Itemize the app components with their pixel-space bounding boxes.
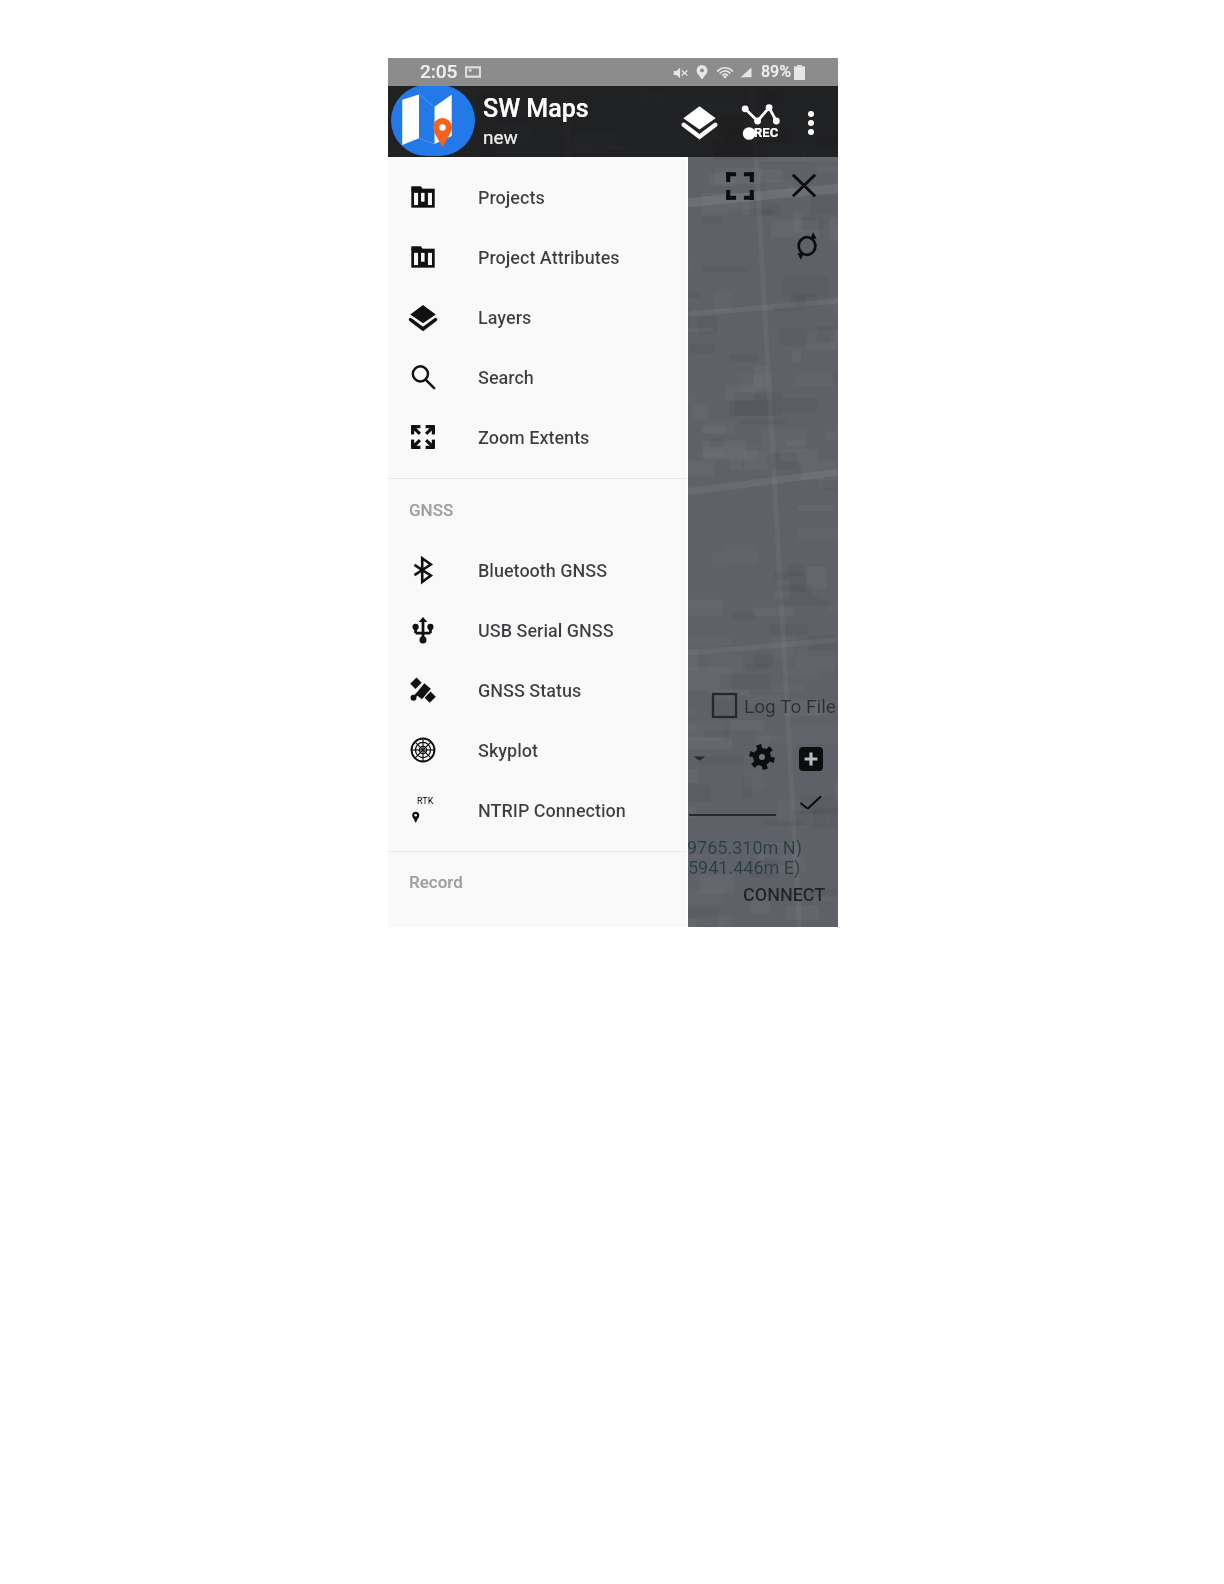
staticText: Record (409, 872, 463, 892)
button[interactable]: Layers (675, 97, 723, 145)
staticText: new (483, 126, 518, 148)
button[interactable]: Settings (749, 744, 775, 770)
staticText: NTRIP Connection (478, 800, 626, 821)
staticText: 2:05 (420, 60, 458, 82)
staticText: Skyplot (478, 740, 539, 761)
button[interactable]: Refresh (796, 233, 818, 259)
staticText: SW Maps (483, 94, 589, 123)
staticText: USB Serial GNSS (478, 620, 614, 641)
staticText: 9765.310m N) (687, 837, 802, 858)
staticText: GNSS (409, 500, 454, 520)
button[interactable]: Open dropdown (692, 751, 706, 765)
button[interactable]: CONNECT (743, 884, 826, 905)
button[interactable]: More options (791, 103, 831, 143)
button[interactable]: Record track (737, 97, 783, 149)
button[interactable]: Add (799, 747, 823, 771)
staticText: Project Attributes (478, 247, 620, 268)
staticText: 89% (761, 62, 791, 81)
button[interactable]: USB Serial GNSS (388, 600, 688, 660)
staticText: Search (478, 367, 534, 388)
staticText: 5941.446m E) (688, 857, 801, 878)
button[interactable]: Skyplot (388, 720, 688, 780)
button[interactable]: Projects (388, 167, 688, 227)
staticText: Zoom Extents (478, 427, 590, 448)
staticText: Log To File (744, 695, 836, 717)
button[interactable]: Full extent (725, 171, 755, 201)
button[interactable]: Search (388, 347, 688, 407)
staticText: CONNECT (743, 884, 826, 905)
other: SW Maps logo (391, 86, 475, 156)
button[interactable]: Layers (388, 287, 688, 347)
staticText: GNSS Status (478, 680, 582, 701)
button[interactable]: Zoom Extents (388, 407, 688, 467)
staticText: REC (754, 125, 779, 140)
button[interactable]: Log to file (713, 694, 736, 717)
button[interactable]: Close (789, 171, 819, 200)
button[interactable]: Bluetooth GNSS (388, 540, 688, 600)
button[interactable]: Confirm (798, 792, 823, 813)
button[interactable]: GNSS Status (388, 660, 688, 720)
staticText: Bluetooth GNSS (478, 560, 608, 581)
staticText: Layers (478, 307, 532, 328)
staticText: Projects (478, 187, 545, 208)
staticText: RTK (417, 796, 434, 807)
button[interactable]: RTK (388, 780, 688, 840)
button[interactable]: Project Attributes (388, 227, 688, 287)
